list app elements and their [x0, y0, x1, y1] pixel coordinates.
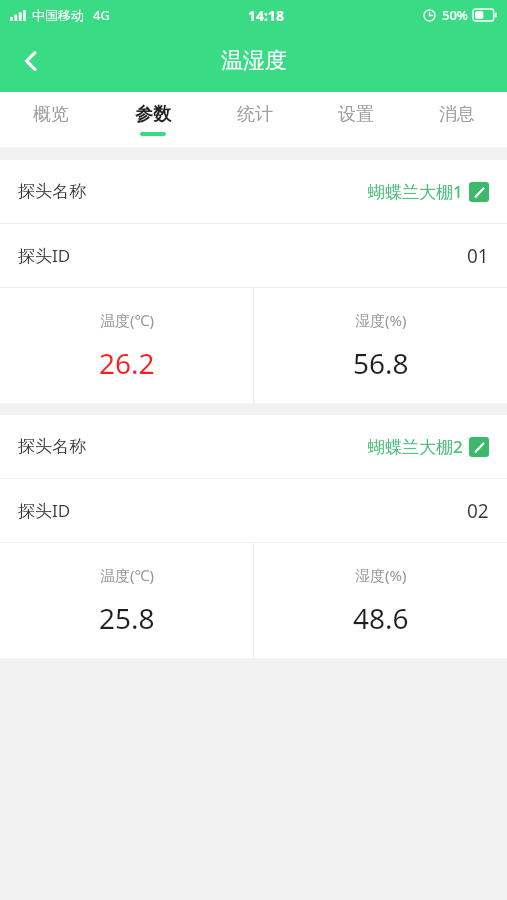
staticText: 湿度(%) [355, 565, 407, 585]
staticText: 探头ID [18, 499, 71, 522]
staticText: 消息 [439, 103, 475, 126]
staticText: 26.2 [99, 344, 155, 382]
staticText: 温度(℃) [100, 565, 154, 585]
staticText: 探头ID [18, 244, 71, 267]
staticText: 中国移动 [32, 7, 84, 23]
staticText: 50% [442, 6, 468, 24]
button[interactable]: 参数 [102, 92, 204, 147]
staticText: 14:18 [248, 6, 284, 25]
staticText: 统计 [237, 103, 273, 126]
staticText: 设置 [338, 103, 374, 126]
button[interactable]: 消息 [406, 92, 507, 147]
button[interactable]: Back [6, 36, 56, 86]
staticText: 温度(℃) [100, 310, 154, 330]
staticText: 湿度(%) [355, 310, 407, 330]
staticText: 温湿度 [221, 47, 287, 75]
button[interactable]: 概览 [0, 92, 102, 147]
staticText: 4G [93, 6, 110, 24]
button[interactable]: 设置 [305, 92, 406, 147]
button[interactable]: 探头名称 [0, 415, 507, 478]
staticText: 探头名称 [18, 436, 86, 457]
staticText: 56.8 [353, 344, 409, 382]
staticText: 48.6 [353, 599, 409, 637]
staticText: 蝴蝶兰大棚2 [368, 435, 463, 458]
button[interactable]: Edit name [469, 182, 489, 202]
staticText: 探头名称 [18, 181, 86, 202]
staticText: 01 [467, 243, 489, 269]
button[interactable]: 统计 [204, 92, 305, 147]
button[interactable]: Edit name [469, 437, 489, 457]
staticText: 25.8 [99, 599, 155, 637]
staticText: 蝴蝶兰大棚1 [368, 180, 463, 203]
button[interactable]: 探头名称 [0, 160, 507, 223]
staticText: 02 [467, 498, 489, 524]
staticText: 参数 [135, 103, 171, 126]
staticText: 概览 [33, 103, 69, 126]
